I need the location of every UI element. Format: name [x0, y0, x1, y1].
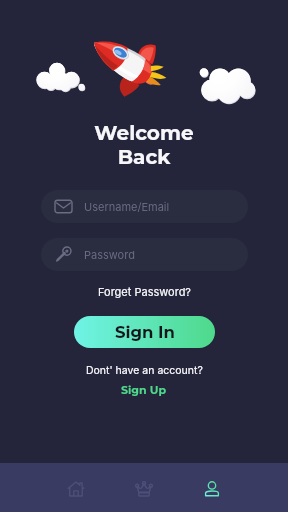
button[interactable]: Sign Up [115, 381, 173, 398]
button[interactable]: Forget Password? [92, 282, 197, 301]
staticText: Dont' have an account? [86, 364, 203, 377]
staticText: Forget Password? [98, 285, 191, 298]
button[interactable]: Premium [120, 463, 168, 512]
button[interactable]: Profile [188, 463, 236, 512]
staticText: Sign Up [121, 383, 167, 396]
button[interactable]: Password [41, 238, 248, 271]
staticText: Sign In [115, 322, 175, 342]
staticText: Welcome Back [94, 121, 194, 169]
button[interactable]: Sign In [74, 316, 215, 348]
staticText: Password [84, 248, 135, 261]
button[interactable]: Home [52, 463, 100, 512]
button[interactable]: Username/Email [41, 190, 248, 223]
staticText: Username/Email [84, 200, 170, 213]
